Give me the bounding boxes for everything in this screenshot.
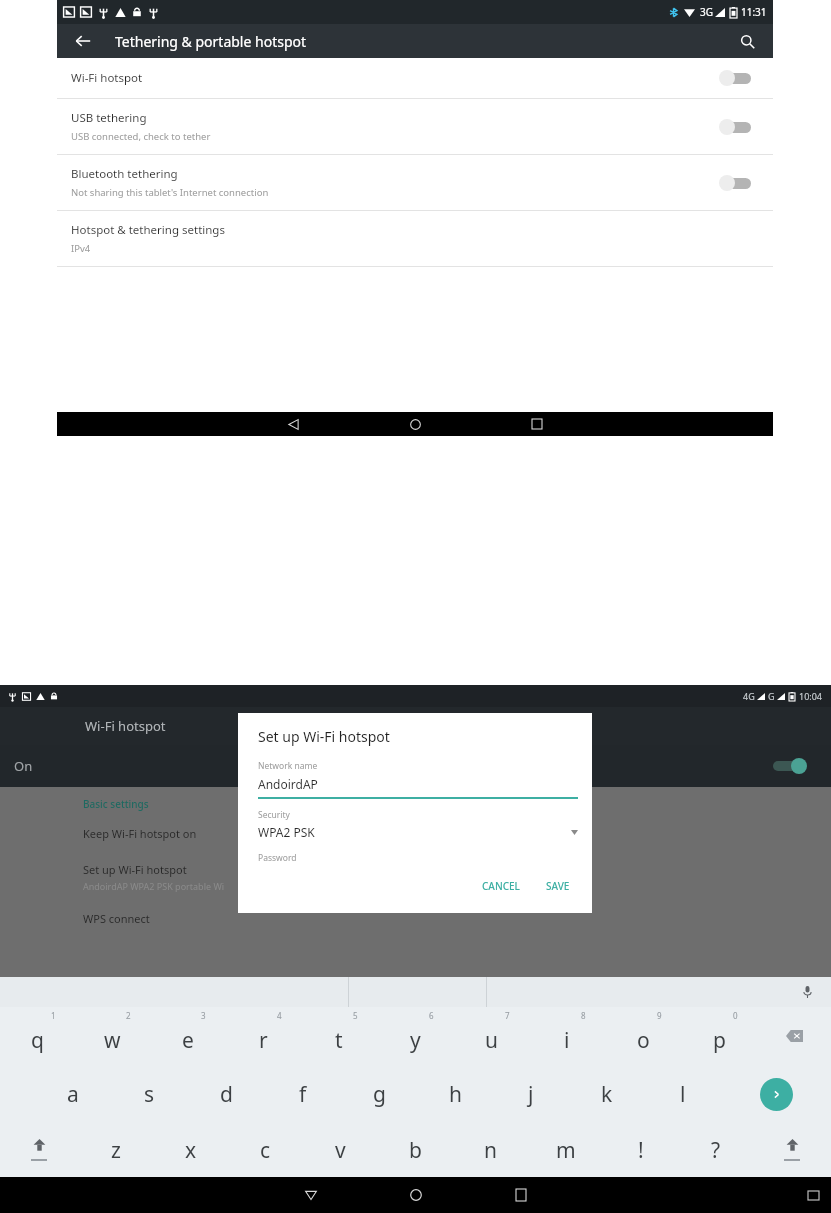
button[interactable]: ? [678, 1123, 753, 1177]
staticText: t [335, 1026, 343, 1055]
staticText: USB tethering [71, 110, 147, 126]
button[interactable]: f [265, 1065, 341, 1123]
staticText: 2 [126, 1010, 131, 1021]
button[interactable]: 0 [681, 1007, 757, 1065]
button[interactable]: ! [603, 1123, 678, 1177]
button[interactable]: Hotspot & tethering settings [57, 211, 773, 267]
button[interactable]: Bluetooth tethering switch [719, 175, 751, 191]
staticText: Password [258, 852, 297, 864]
button[interactable]: c [228, 1123, 303, 1177]
button[interactable]: Enter [721, 1065, 831, 1123]
button[interactable]: 3 [150, 1007, 225, 1065]
button[interactable]: 2 [75, 1007, 150, 1065]
staticText: h [449, 1080, 462, 1109]
staticText: e [182, 1026, 194, 1055]
button[interactable]: Wi-Fi hotspot switch [719, 70, 751, 86]
button[interactable]: Home [390, 412, 440, 436]
staticText: Hotspot & tethering settings [71, 222, 225, 238]
staticText: AndoirdAP [258, 776, 318, 792]
button[interactable]: WPA2 PSK [258, 824, 578, 840]
button[interactable]: d [188, 1065, 265, 1123]
staticText: Basic settings [83, 797, 149, 811]
button[interactable]: v [303, 1123, 378, 1177]
staticText: Wi-Fi hotspot [85, 717, 166, 735]
button[interactable]: l [645, 1065, 721, 1123]
button[interactable]: 7 [453, 1007, 529, 1065]
staticText: o [637, 1026, 650, 1055]
button[interactable]: m [528, 1123, 603, 1177]
button[interactable]: s [111, 1065, 188, 1123]
button[interactable]: 4 [225, 1007, 301, 1065]
staticText: On [14, 757, 33, 775]
button[interactable]: Recents [512, 412, 562, 436]
button[interactable]: Shift [0, 1123, 78, 1177]
button[interactable]: g [341, 1065, 417, 1123]
staticText: 1 [51, 1010, 56, 1021]
staticText: Keep Wi-Fi hotspot on [83, 826, 197, 841]
staticText: Wi-Fi hotspot [71, 70, 143, 86]
staticText: m [556, 1136, 576, 1165]
button[interactable]: CANCEL [474, 875, 528, 897]
staticText: 9 [657, 1010, 662, 1021]
button[interactable]: SAVE [538, 875, 578, 897]
staticText: r [259, 1026, 268, 1055]
staticText: 11:31 [741, 5, 767, 19]
button[interactable]: Search [733, 27, 761, 55]
button[interactable]: USB tethering [57, 99, 773, 155]
staticText: USB connected, check to tether [71, 130, 211, 143]
button[interactable]: b [378, 1123, 453, 1177]
staticText: k [601, 1080, 613, 1109]
button[interactable]: x [153, 1123, 228, 1177]
button[interactable]: 6 [377, 1007, 453, 1065]
staticText: 4G [743, 690, 755, 702]
button[interactable]: a [34, 1065, 111, 1123]
staticText: SAVE [546, 879, 570, 893]
button[interactable]: Delete [757, 1007, 831, 1065]
button[interactable]: Wi-Fi hotspot [57, 58, 773, 99]
staticText: q [31, 1026, 44, 1055]
staticText: w [104, 1026, 121, 1055]
button[interactable]: 5 [301, 1007, 377, 1065]
button[interactable]: USB tethering switch [719, 119, 751, 135]
button[interactable]: 9 [605, 1007, 681, 1065]
staticText: IPv4 [71, 242, 91, 255]
staticText: a [67, 1080, 79, 1109]
staticText: WPA2 PSK [258, 824, 315, 840]
button[interactable]: Recents [491, 1177, 551, 1213]
button[interactable]: Bluetooth tethering [57, 155, 773, 211]
staticText: Tethering & portable hotspot [115, 32, 307, 51]
staticText: 10:04 [799, 690, 823, 702]
staticText: n [484, 1136, 497, 1165]
button[interactable]: n [453, 1123, 528, 1177]
staticText: Network name [258, 760, 318, 772]
staticText: ? [711, 1136, 721, 1165]
staticText: Set up Wi-Fi hotspot [258, 727, 390, 746]
staticText: 5 [353, 1010, 358, 1021]
staticText: 7 [505, 1010, 510, 1021]
button[interactable]: z [78, 1123, 153, 1177]
button[interactable]: Hotspot switch [773, 758, 807, 774]
button[interactable]: 8 [529, 1007, 605, 1065]
button[interactable]: j [493, 1065, 569, 1123]
button[interactable]: Shift [753, 1123, 831, 1177]
staticText: f [299, 1080, 307, 1109]
button[interactable]: 1 [0, 1007, 75, 1065]
staticText: Not sharing this tablet's Internet conne… [71, 186, 269, 199]
button[interactable]: Home [386, 1177, 446, 1213]
button[interactable]: Voice input [797, 982, 817, 1002]
staticText: j [528, 1080, 534, 1109]
button[interactable]: k [569, 1065, 645, 1123]
staticText: b [409, 1136, 422, 1165]
button[interactable]: Back [69, 27, 97, 55]
button[interactable]: h [417, 1065, 493, 1123]
button[interactable]: Hide keyboard [805, 1187, 821, 1203]
staticText: c [260, 1136, 271, 1165]
staticText: WPS connect [83, 911, 150, 926]
staticText: z [111, 1136, 121, 1165]
button[interactable]: Back [281, 1177, 341, 1213]
staticText: s [144, 1080, 155, 1109]
staticText: 6 [429, 1010, 434, 1021]
staticText: AndoirdAP WPA2 PSK portable Wi [83, 880, 225, 892]
staticText: Set up Wi-Fi hotspot [83, 862, 187, 877]
button[interactable]: Back [268, 412, 318, 436]
